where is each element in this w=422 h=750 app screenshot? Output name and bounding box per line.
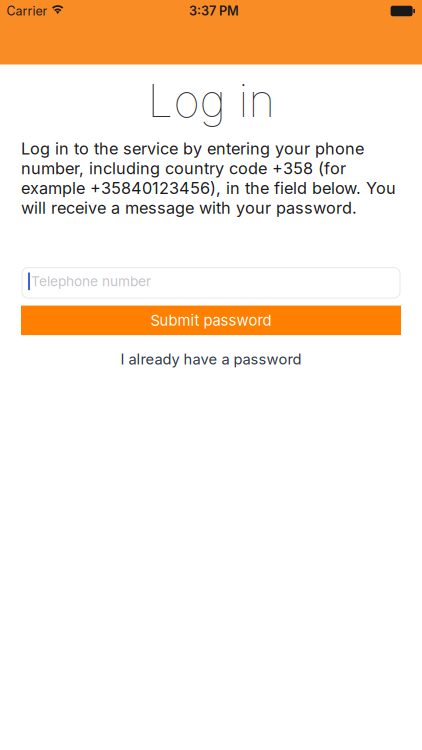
staticText: Log in to the service by entering your p…: [21, 139, 396, 218]
button[interactable]: Submit password: [21, 306, 401, 335]
button[interactable]: I already have a password: [21, 348, 401, 370]
staticText: 3:37 PM: [189, 3, 239, 19]
staticText: Carrier: [6, 3, 47, 18]
staticText: I already have a password: [120, 350, 301, 368]
staticText: Submit password: [150, 311, 271, 329]
staticText: Telephone number: [31, 273, 151, 290]
staticText: Log in: [147, 73, 274, 128]
